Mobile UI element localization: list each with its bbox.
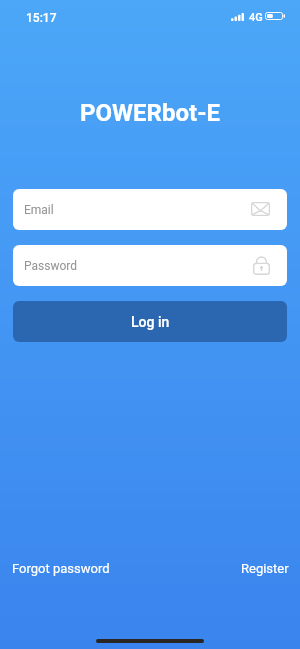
button[interactable]: Forgot password xyxy=(12,561,110,576)
button[interactable]: Register xyxy=(241,561,289,576)
staticText: Forgot password xyxy=(12,561,110,576)
staticText: POWERbot-E xyxy=(0,99,300,127)
staticText: Password xyxy=(24,259,78,273)
staticText: Email xyxy=(24,203,54,217)
other: Email xyxy=(251,203,270,217)
staticText: Log in xyxy=(131,314,170,330)
other: Password xyxy=(253,256,270,276)
staticText: 4G xyxy=(249,11,263,24)
button[interactable]: Password xyxy=(13,245,287,286)
staticText: Register xyxy=(241,561,289,576)
staticText: 15:17 xyxy=(26,11,57,25)
button[interactable]: Log in xyxy=(13,301,287,342)
button[interactable]: Email xyxy=(13,189,287,230)
